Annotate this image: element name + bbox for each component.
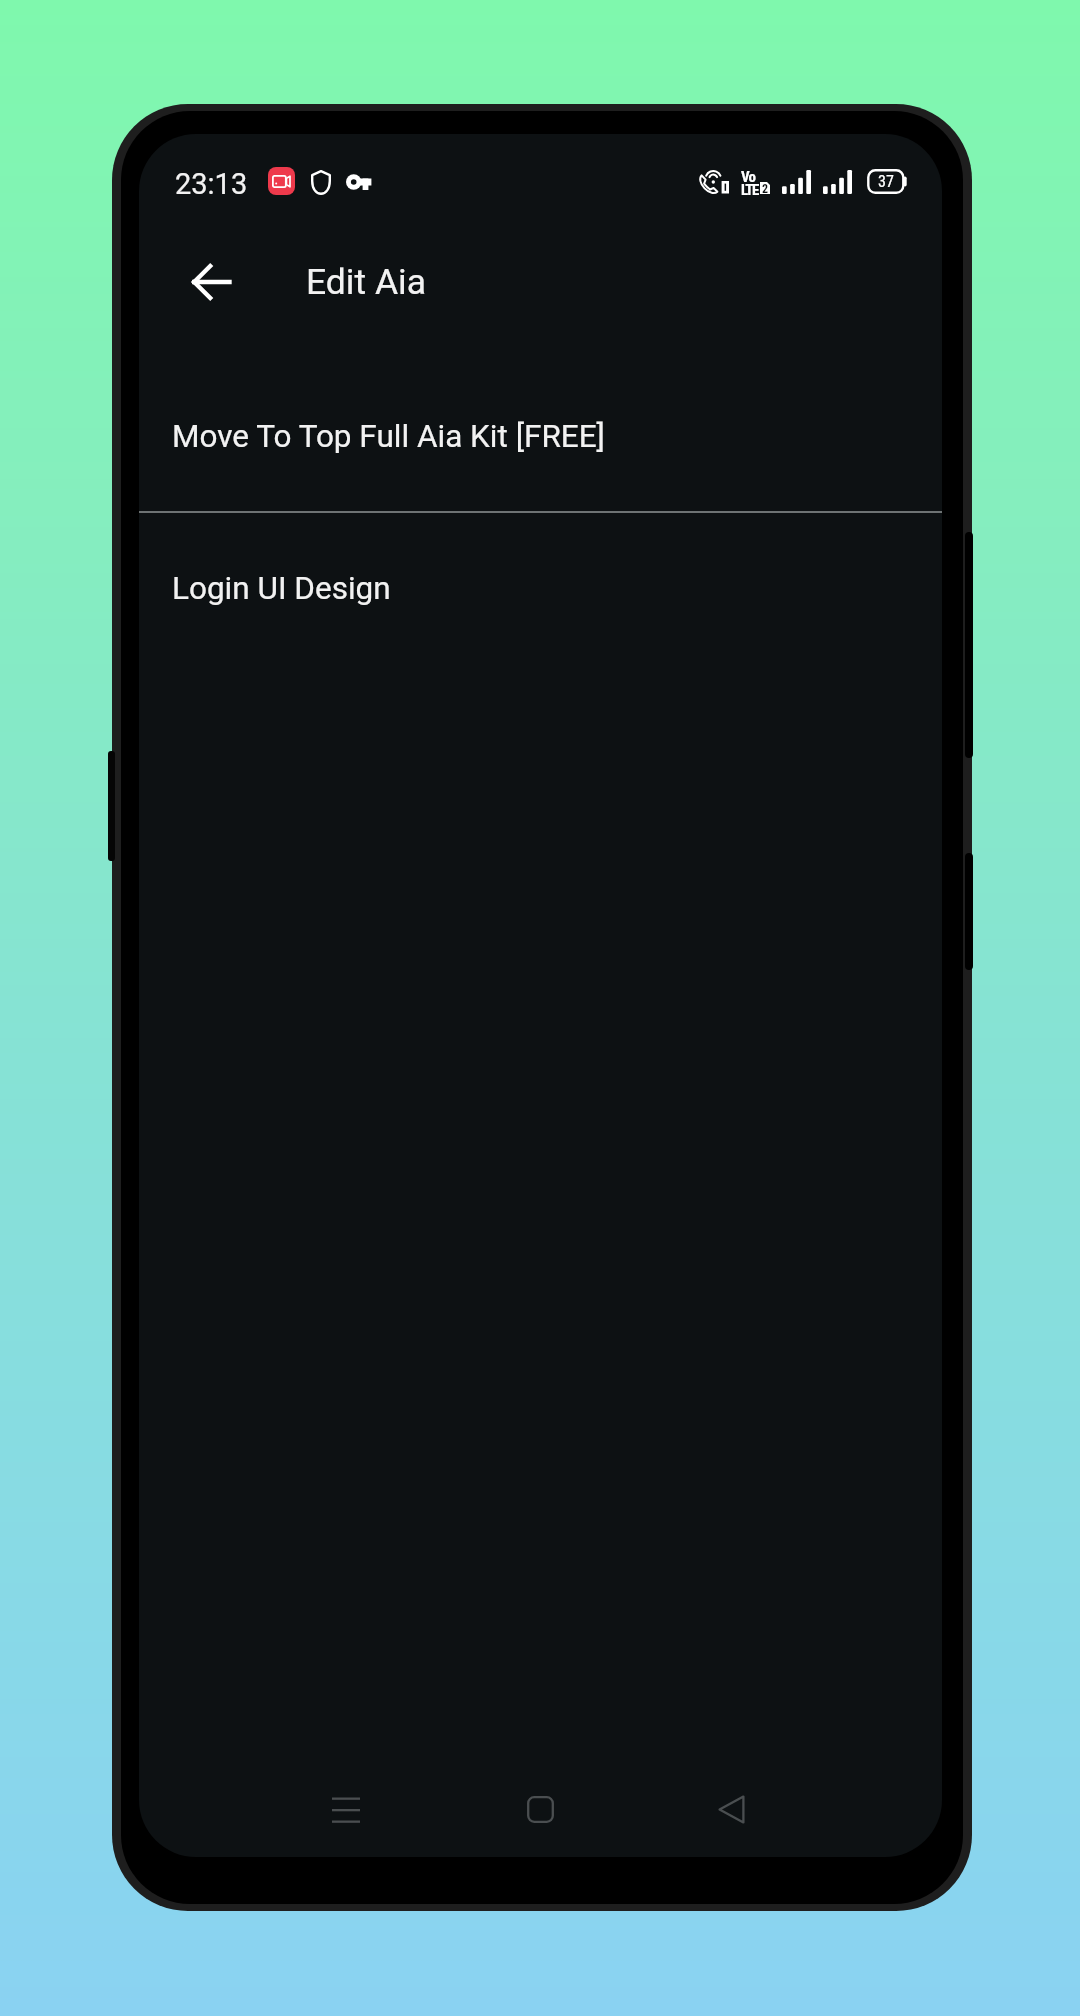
- staticText: Vo: [741, 168, 755, 186]
- staticText: Move To Top Full Aia Kit [FREE]: [172, 418, 605, 455]
- staticText: Edit Aia: [306, 261, 427, 303]
- button[interactable]: Home: [500, 1769, 580, 1849]
- button[interactable]: Recent apps: [306, 1769, 386, 1849]
- staticText: 2: [762, 182, 769, 194]
- button[interactable]: Back: [691, 1769, 771, 1849]
- staticText: 37: [878, 172, 894, 191]
- button[interactable]: Login UI Design: [139, 513, 942, 663]
- staticText: Login UI Design: [172, 570, 391, 607]
- staticText: LTE: [741, 181, 758, 199]
- button[interactable]: Back: [165, 236, 257, 328]
- button[interactable]: Move To Top Full Aia Kit [FREE]: [139, 361, 942, 511]
- staticText: 23:13: [175, 167, 248, 201]
